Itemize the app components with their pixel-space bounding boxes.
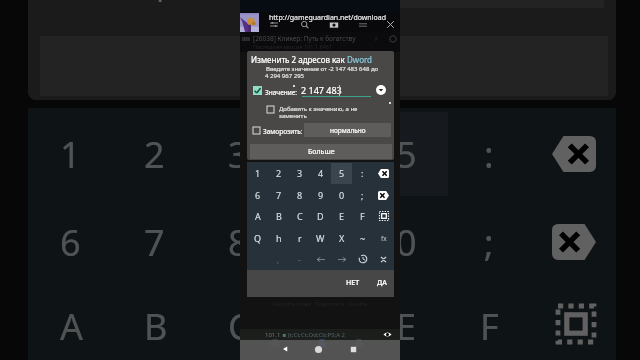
staticText: r — [298, 232, 302, 244]
button[interactable]: Больше — [40, 36, 608, 96]
button[interactable] — [331, 248, 352, 270]
button[interactable]: D — [310, 205, 331, 227]
button[interactable]: 0 — [331, 184, 352, 206]
button[interactable]: 1 — [28, 108, 112, 196]
button[interactable]: : — [352, 162, 373, 184]
staticText: НЕТ — [346, 278, 360, 288]
button[interactable]: ~ — [352, 227, 373, 249]
staticText: 4 294 967 295 — [265, 72, 305, 80]
button[interactable]: A — [247, 205, 268, 227]
staticText: 1 — [255, 167, 261, 179]
staticText: Q — [254, 232, 262, 244]
button[interactable] — [373, 162, 394, 184]
staticText: F — [375, 35, 379, 43]
button[interactable]: h — [268, 227, 289, 249]
button[interactable]: ; — [448, 196, 532, 284]
button[interactable]: ДА — [373, 277, 391, 289]
button[interactable] — [373, 205, 394, 227]
button[interactable]: Close — [385, 19, 396, 30]
button[interactable]: 8 — [289, 184, 310, 206]
staticText: 1 — [60, 128, 84, 176]
button[interactable] — [532, 108, 616, 196]
button[interactable]: 2 — [112, 108, 196, 196]
button[interactable]: 0 — [364, 196, 448, 284]
button[interactable]: B — [112, 280, 196, 360]
button[interactable]: НЕТ — [343, 277, 363, 289]
staticText: 6 — [60, 216, 84, 264]
button[interactable] — [373, 184, 394, 206]
button[interactable]: Back — [281, 345, 289, 353]
button[interactable] — [352, 248, 373, 270]
staticText: D — [317, 210, 324, 222]
button[interactable]: Value enabled — [253, 86, 262, 95]
button[interactable]: Recents — [349, 345, 358, 354]
staticText: W — [316, 232, 325, 244]
button[interactable]: нормально — [304, 123, 391, 137]
button[interactable]: E — [331, 205, 352, 227]
button[interactable]: fx — [373, 227, 394, 249]
button[interactable]: C — [196, 280, 280, 360]
staticText: fx — [381, 234, 387, 243]
button[interactable]: 9 — [280, 196, 364, 284]
button[interactable]: 6 — [28, 196, 112, 284]
button[interactable]: E — [364, 280, 448, 360]
button[interactable]: 3 — [289, 162, 310, 184]
button[interactable]: F — [448, 280, 532, 360]
button[interactable]: A — [28, 280, 112, 360]
staticText: 5 — [339, 167, 345, 179]
button[interactable]: нормально — [256, 0, 604, 8]
button[interactable]: F — [352, 205, 373, 227]
button[interactable]: 7 — [112, 196, 196, 284]
button[interactable]: W — [310, 227, 331, 249]
button[interactable]: B — [268, 205, 289, 227]
button[interactable]: Add to value — [267, 106, 274, 113]
button[interactable]: Menu — [269, 20, 279, 30]
button[interactable] — [373, 248, 394, 270]
button[interactable]: ; — [352, 184, 373, 206]
button[interactable]: 7 — [268, 184, 289, 206]
button[interactable]: Expand — [376, 85, 386, 95]
staticText: Последняя версия 101.1.8461 — [253, 43, 333, 50]
button[interactable]: 9 — [310, 184, 331, 206]
button[interactable]: Search — [300, 20, 310, 30]
button[interactable]: Camera — [329, 20, 339, 30]
button[interactable]: Freeze — [253, 127, 260, 134]
staticText: ДА — [377, 278, 387, 288]
button[interactable]: Visibility — [383, 330, 392, 339]
staticText: E — [339, 210, 345, 222]
staticText: 9 — [318, 189, 324, 201]
staticText: : — [361, 167, 364, 179]
button[interactable]: Q — [247, 227, 268, 249]
button[interactable]: List — [358, 20, 368, 30]
button[interactable]: C — [289, 205, 310, 227]
button[interactable] — [532, 280, 616, 360]
button[interactable]: 2 — [268, 162, 289, 184]
button[interactable] — [310, 248, 331, 270]
button[interactable]: Home — [314, 345, 323, 354]
button[interactable]: 4 — [280, 108, 364, 196]
button[interactable]: Больше — [250, 144, 392, 159]
button[interactable]: r — [289, 227, 310, 249]
staticText: [26038] Кликер: Путь к богатству — [253, 34, 356, 43]
button[interactable]: 4 — [310, 162, 331, 184]
staticText: B — [144, 300, 168, 348]
staticText: ; — [484, 216, 496, 264]
staticText: Добавить к значению, а не — [279, 105, 358, 113]
button[interactable]: 5 — [364, 108, 448, 196]
button[interactable]: : — [448, 108, 532, 196]
staticText: Изменить 2 адресов как — [251, 54, 345, 65]
button[interactable]: 8 — [196, 196, 280, 284]
button[interactable]: 6 — [247, 184, 268, 206]
button[interactable]: 3 — [196, 108, 280, 196]
button[interactable]: D — [280, 280, 364, 360]
button[interactable] — [532, 196, 616, 284]
staticText: Jt;Ct;Ct;Od;Cb;PS;A 2 — [288, 331, 345, 339]
button[interactable]: 5 — [331, 162, 352, 184]
staticText: ▪ — [282, 331, 287, 338]
button[interactable]: X — [331, 227, 352, 249]
staticText: 101.1 — [265, 331, 281, 339]
button[interactable]: 1 — [247, 162, 268, 184]
